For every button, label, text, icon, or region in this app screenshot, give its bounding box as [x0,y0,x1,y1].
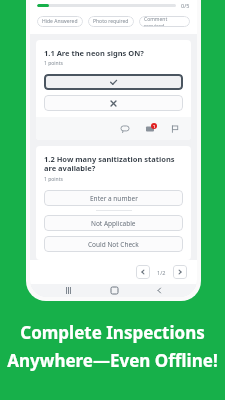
button[interactable]: Not Applicable [44,215,183,231]
staticText: Not Applicable [91,219,136,228]
button[interactable]: Enter a number [44,190,183,206]
button[interactable]: Could Not Check [44,236,183,252]
button[interactable]: Add comment [118,122,131,135]
staticText: 1 points [44,176,63,183]
staticText: Hide Answered [42,18,78,25]
staticText: Enter a number [90,194,138,203]
button[interactable]: Next page [173,265,187,279]
button[interactable]: Add photo [143,122,156,135]
staticText: 1 points [44,60,63,67]
staticText: 1 [153,124,156,129]
button[interactable]: Flag [168,122,181,135]
button[interactable]: Home [106,284,122,297]
staticText: Complete Inspections [20,321,205,344]
staticText: 1/2 [157,269,166,276]
staticText: 1.2 How many sanitization stations are a… [44,154,183,174]
button[interactable]: No [44,95,183,111]
staticText: 1.1 Are the neon signs ON? [44,48,144,58]
staticText: Could Not Check [88,240,139,249]
staticText: Anywhere—Even Offline! [7,349,218,372]
button[interactable]: Back [151,284,167,297]
button[interactable]: Yes [44,74,183,90]
button[interactable]: Comment required [139,16,190,27]
staticText: Comment required [144,16,185,27]
button[interactable]: Photo required [88,16,134,27]
button[interactable]: Previous page [136,265,150,279]
staticText: Photo required [93,18,129,25]
button[interactable]: Recent apps [60,284,76,297]
staticText: 0/5 [181,2,190,9]
button[interactable]: Hide Answered [37,16,83,27]
